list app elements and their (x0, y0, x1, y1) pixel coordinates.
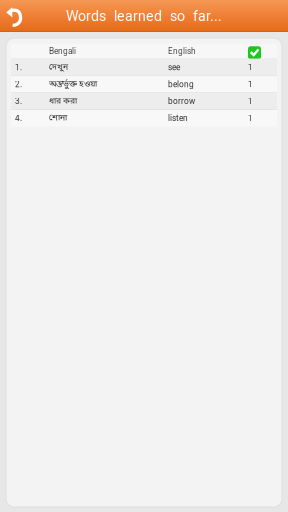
staticText: দেখুন (49, 62, 68, 73)
staticText: see (168, 63, 180, 72)
staticText: 3. (15, 96, 22, 106)
staticText: 1 (248, 63, 253, 72)
button[interactable]: 1. (11, 59, 277, 75)
staticText: 1 (248, 79, 253, 89)
button[interactable]: 3. (11, 93, 277, 109)
staticText: belong (168, 79, 194, 89)
staticText: 1. (15, 63, 22, 72)
staticText: অন্তর্ভুক্ত হওয়া (49, 79, 97, 90)
staticText: 4. (15, 113, 22, 123)
staticText: listen (168, 113, 188, 123)
staticText: ধার করা (49, 96, 77, 107)
staticText: 1 (248, 113, 253, 123)
staticText: 2. (15, 79, 22, 89)
staticText: borrow (168, 96, 195, 106)
button[interactable]: 4. (11, 110, 277, 126)
button[interactable]: Back (0, 0, 36, 32)
staticText: Bengali (49, 46, 76, 56)
button[interactable]: 2. (11, 76, 277, 92)
staticText: 1 (248, 96, 253, 106)
staticText: English (168, 46, 196, 56)
staticText: শোনা (49, 112, 67, 124)
staticText: Words learned so far... (66, 8, 222, 24)
